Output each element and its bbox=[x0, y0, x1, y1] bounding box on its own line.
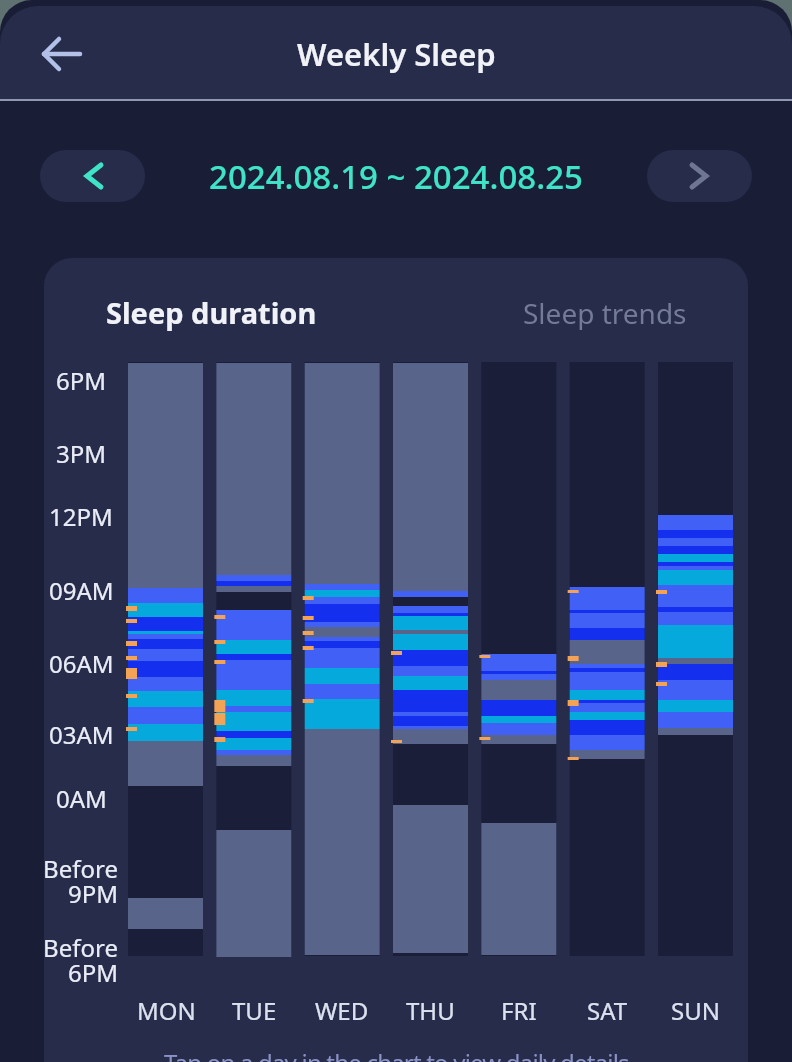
staticText: Before 9PM bbox=[43, 852, 118, 908]
staticText: Weekly Sleep bbox=[297, 33, 496, 75]
staticText: Sleep duration bbox=[106, 293, 317, 332]
button[interactable] bbox=[647, 150, 752, 202]
button[interactable]: THU bbox=[386, 994, 474, 1026]
staticText: THU bbox=[406, 994, 455, 1026]
staticText: SUN bbox=[671, 994, 720, 1026]
button[interactable]: FRI bbox=[475, 994, 563, 1026]
button[interactable]: TUE bbox=[210, 994, 298, 1026]
button[interactable]: Sleep duration bbox=[106, 293, 317, 332]
staticText: MON bbox=[137, 994, 196, 1026]
button[interactable]: WED bbox=[298, 994, 386, 1026]
staticText: 09AM bbox=[49, 574, 114, 606]
staticText: Sleep trends bbox=[523, 294, 687, 330]
staticText: Tap on a day in the chart to view daily … bbox=[164, 1046, 629, 1062]
staticText: Before 6PM bbox=[43, 931, 118, 987]
staticText: 03AM bbox=[49, 718, 114, 750]
button[interactable]: Sleep trends bbox=[487, 294, 687, 330]
staticText: 2024.08.19 ~ 2024.08.25 bbox=[209, 154, 583, 199]
staticText: 12PM bbox=[49, 500, 113, 532]
button[interactable] bbox=[40, 150, 145, 202]
staticText: 6PM bbox=[56, 364, 107, 396]
button[interactable]: SAT bbox=[563, 994, 651, 1026]
staticText: SAT bbox=[587, 994, 628, 1026]
staticText: 0AM bbox=[56, 782, 107, 814]
staticText: 3PM bbox=[56, 437, 107, 469]
button[interactable]: SUN bbox=[651, 994, 739, 1026]
button[interactable] bbox=[30, 22, 94, 86]
staticText: WED bbox=[315, 994, 369, 1026]
button[interactable]: MON bbox=[122, 994, 210, 1026]
staticText: TUE bbox=[232, 994, 277, 1026]
staticText: FRI bbox=[501, 994, 537, 1026]
staticText: 06AM bbox=[49, 647, 114, 679]
